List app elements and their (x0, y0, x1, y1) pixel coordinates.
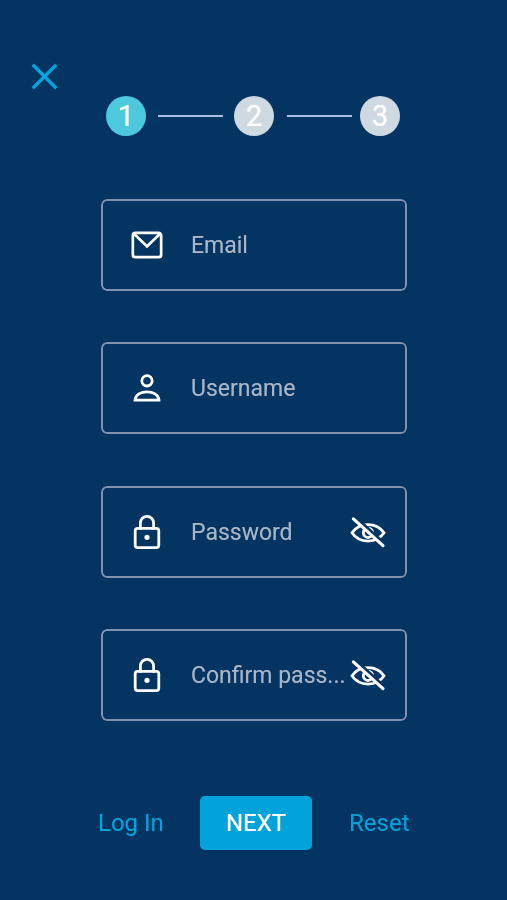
button[interactable]: NEXT (200, 796, 312, 850)
button[interactable]: Close (24, 56, 66, 98)
button[interactable]: 1 (106, 96, 146, 136)
button[interactable]: Log In (80, 796, 182, 850)
staticText: Reset (349, 809, 410, 837)
staticText: 2 (246, 99, 263, 133)
button[interactable]: Toggle password visibility (348, 655, 388, 695)
staticText: Email (191, 232, 248, 259)
staticText: Log In (98, 809, 164, 837)
staticText: NEXT (226, 809, 287, 837)
button[interactable]: 3 (360, 96, 400, 136)
staticText: 1 (118, 99, 135, 133)
staticText: Confirm pass... (191, 662, 346, 689)
button[interactable]: Username (101, 342, 407, 434)
staticText: Password (191, 519, 293, 546)
staticText: 3 (372, 99, 389, 133)
button[interactable]: 2 (234, 96, 274, 136)
staticText: Username (191, 375, 296, 402)
button[interactable]: Confirm pass... (101, 629, 407, 721)
button[interactable]: Password (101, 486, 407, 578)
button[interactable]: Toggle password visibility (348, 512, 388, 552)
button[interactable]: Email (101, 199, 407, 291)
button[interactable]: Reset (329, 796, 429, 850)
